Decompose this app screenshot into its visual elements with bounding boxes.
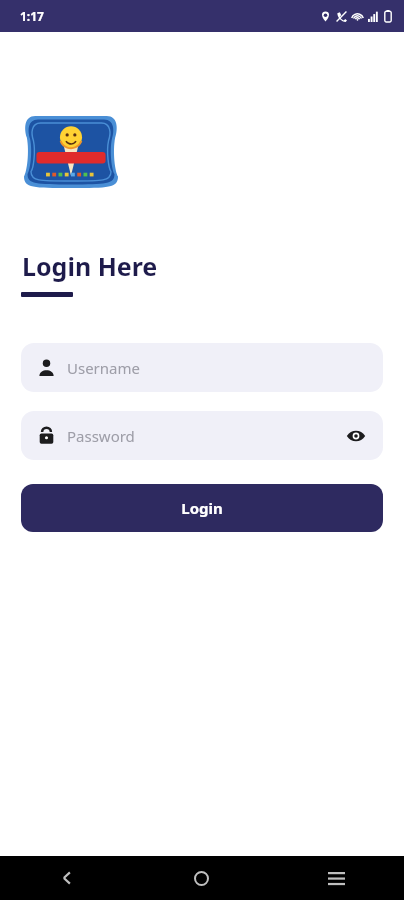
- button[interactable]: Recent apps: [269, 856, 404, 900]
- staticText: Login Here: [22, 249, 158, 283]
- staticText: Login: [181, 498, 223, 518]
- button[interactable]: Password: [21, 411, 383, 460]
- button[interactable]: Home: [134, 856, 269, 900]
- button[interactable]: Username: [21, 343, 383, 392]
- staticText: Password: [67, 426, 135, 446]
- staticText: 1:17: [20, 8, 44, 24]
- button[interactable]: Back: [0, 856, 134, 900]
- button[interactable]: Login: [21, 484, 383, 532]
- button[interactable]: Show password: [343, 423, 369, 449]
- staticText: Username: [67, 358, 140, 378]
